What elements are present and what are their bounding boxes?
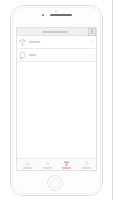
button[interactable]: Home — [18, 159, 36, 171]
button[interactable]: Account — [88, 28, 95, 36]
button[interactable]: Profile — [77, 159, 95, 171]
button[interactable]: Home — [47, 175, 63, 191]
button[interactable] — [16, 36, 97, 48]
button[interactable]: Search — [38, 159, 56, 171]
button[interactable]: Activity — [57, 159, 75, 171]
button[interactable] — [16, 49, 97, 61]
